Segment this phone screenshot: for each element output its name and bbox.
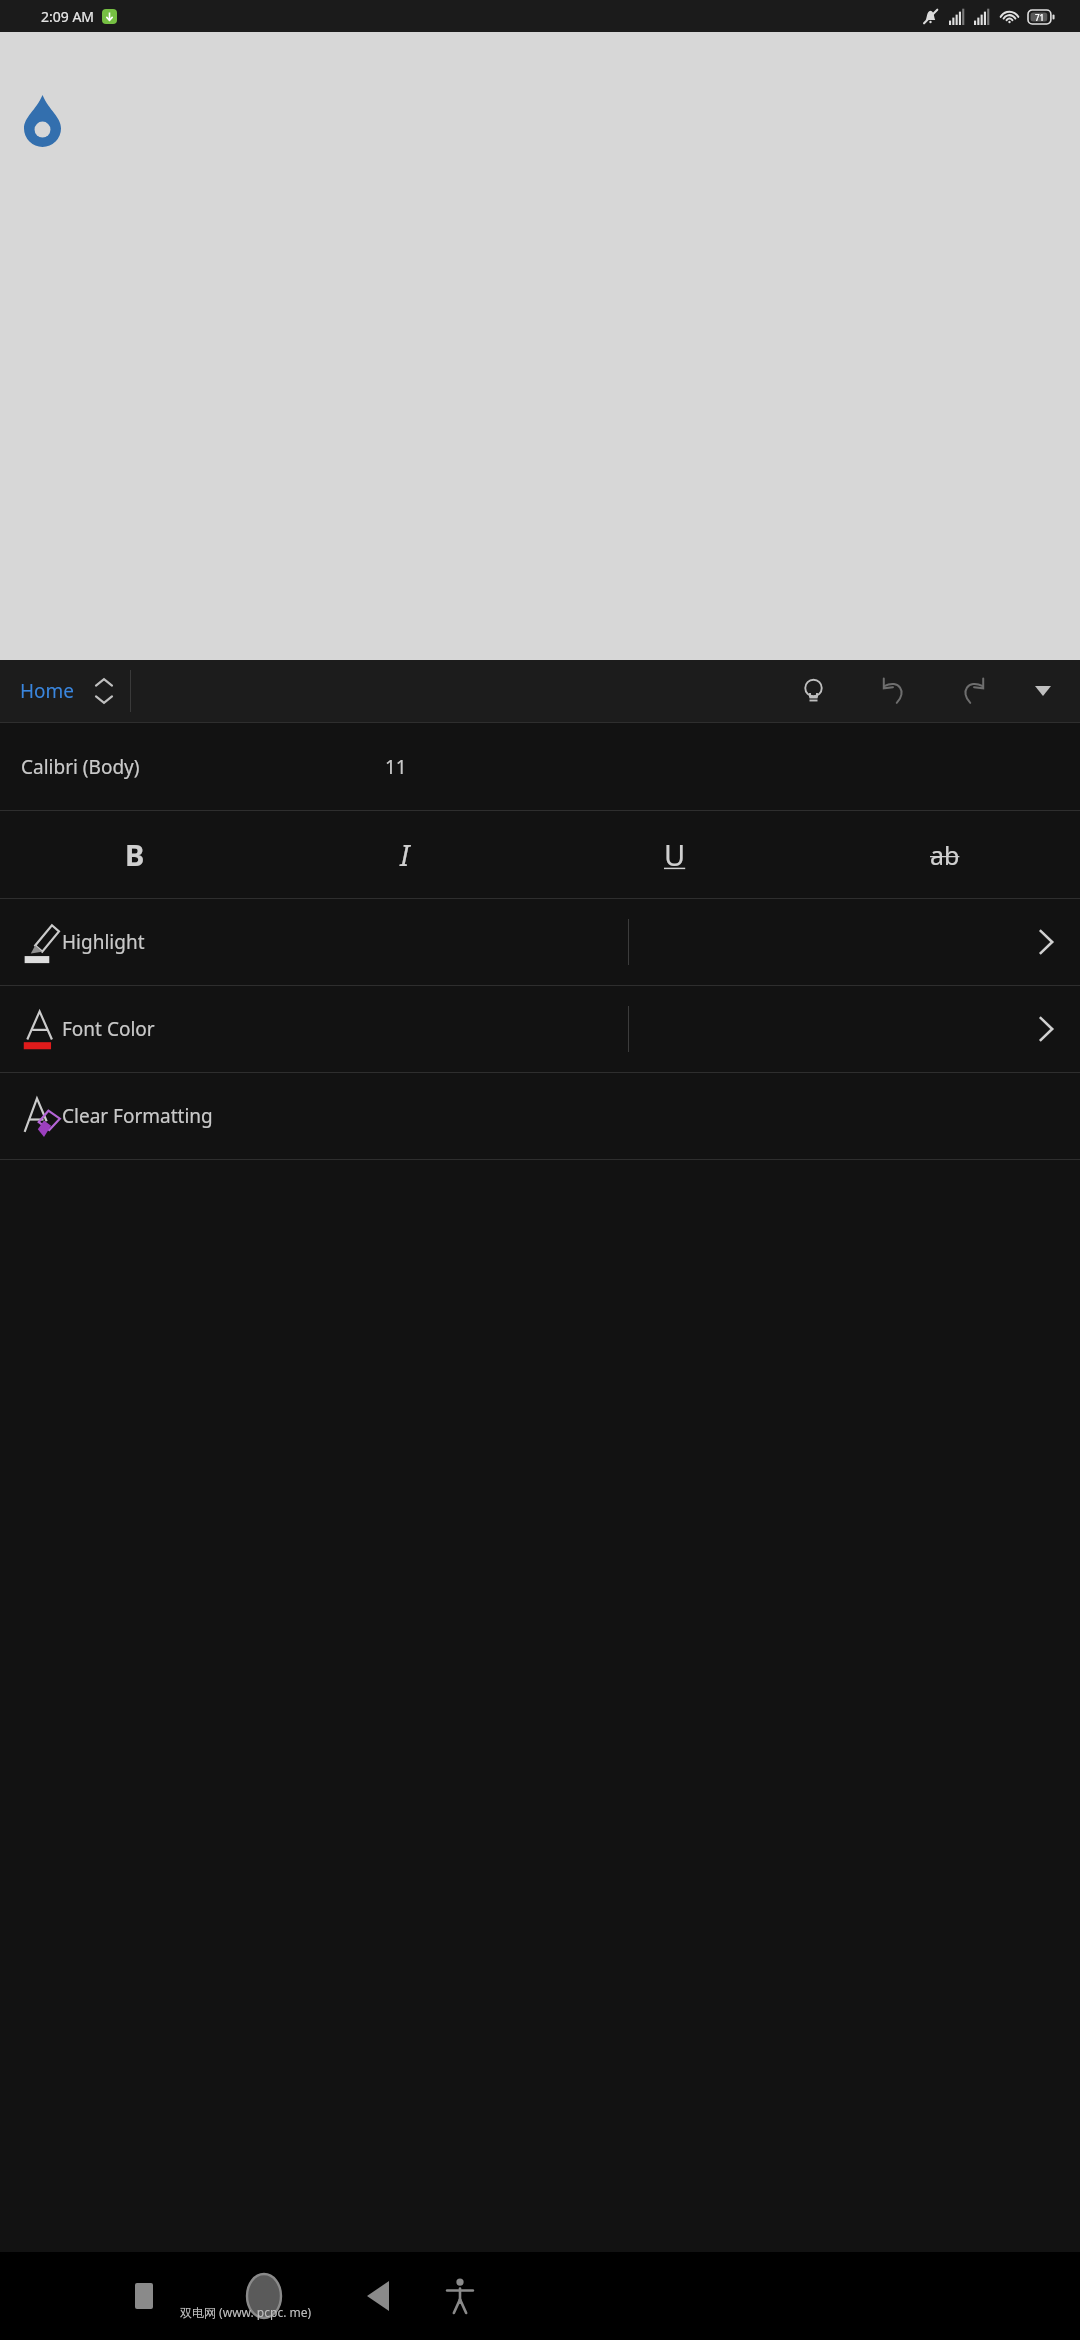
button[interactable]: U xyxy=(540,811,810,898)
staticText: 71 xyxy=(1035,12,1045,23)
staticText: 双电网 (www. pcpc. me) xyxy=(180,2304,312,2320)
staticText: ab xyxy=(930,838,960,872)
button[interactable]: Recents xyxy=(116,2268,172,2324)
staticText: U xyxy=(664,835,686,874)
button[interactable]: Back xyxy=(350,2268,406,2324)
button[interactable]: Collapse ribbon xyxy=(1018,666,1068,716)
staticText: Highlight xyxy=(62,929,145,955)
button[interactable]: Clear Formatting xyxy=(0,1073,1080,1159)
button[interactable]: Accessibility xyxy=(432,2268,488,2324)
staticText: B xyxy=(125,835,145,874)
other: Highlight options xyxy=(1039,929,1054,955)
staticText: Font Color xyxy=(62,1016,155,1042)
staticText: Home xyxy=(20,678,75,704)
button[interactable]: Home xyxy=(234,2266,294,2326)
button[interactable]: Redo xyxy=(946,664,1000,718)
staticText: Calibri (Body) xyxy=(21,754,140,780)
button[interactable]: Highlight xyxy=(0,899,1080,985)
other: Switch tab xyxy=(94,675,114,707)
button[interactable]: Font Color xyxy=(0,986,1080,1072)
staticText: 2:09 AM xyxy=(41,7,95,26)
button[interactable]: ab xyxy=(810,811,1080,898)
staticText: I xyxy=(400,835,410,874)
button[interactable]: B xyxy=(0,811,270,898)
button[interactable]: Undo xyxy=(866,664,920,718)
other: Font Color options xyxy=(1039,1016,1054,1042)
button[interactable]: Calibri (Body) xyxy=(0,723,1080,810)
staticText: 11 xyxy=(385,754,407,780)
button[interactable]: Home xyxy=(0,660,1080,722)
button[interactable]: Tell me xyxy=(786,664,840,718)
button[interactable]: I xyxy=(270,811,540,898)
staticText: Clear Formatting xyxy=(62,1103,213,1129)
